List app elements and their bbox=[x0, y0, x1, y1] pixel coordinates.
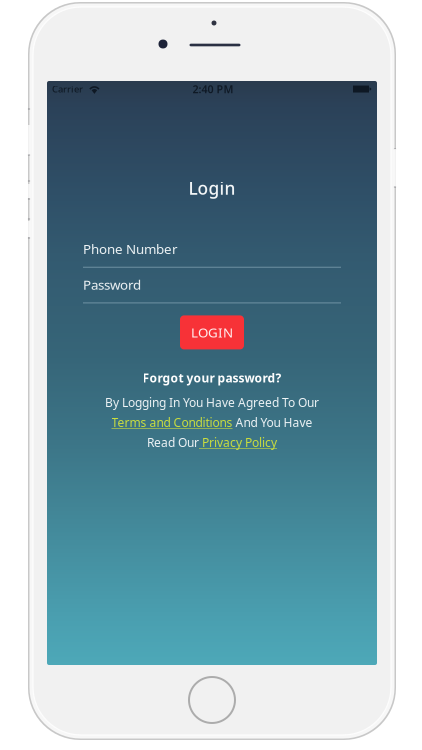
staticText: By Logging In You Have Agreed To Our bbox=[105, 394, 319, 410]
staticText: Read Our bbox=[147, 434, 199, 450]
staticText: Password bbox=[83, 276, 141, 293]
button[interactable]: Home bbox=[189, 677, 235, 723]
staticText: LOGIN bbox=[191, 324, 233, 341]
staticText: 2:40 PM bbox=[192, 82, 233, 96]
staticText: Privacy Policy bbox=[199, 434, 277, 450]
button[interactable]: Privacy Policy bbox=[199, 434, 277, 450]
staticText: Phone Number bbox=[83, 240, 178, 258]
button[interactable]: Forgot your password? bbox=[142, 371, 281, 384]
button[interactable]: Password bbox=[83, 276, 341, 303]
staticText: Terms and Conditions bbox=[111, 414, 232, 430]
staticText: And You Have bbox=[232, 414, 312, 430]
staticText: Login bbox=[188, 176, 235, 199]
staticText: Forgot your password? bbox=[142, 370, 281, 386]
button[interactable]: Terms and Conditions bbox=[111, 414, 232, 430]
button[interactable]: Phone Number bbox=[83, 240, 341, 268]
staticText: Carrier bbox=[52, 83, 83, 95]
button[interactable]: LOGIN bbox=[180, 315, 244, 349]
